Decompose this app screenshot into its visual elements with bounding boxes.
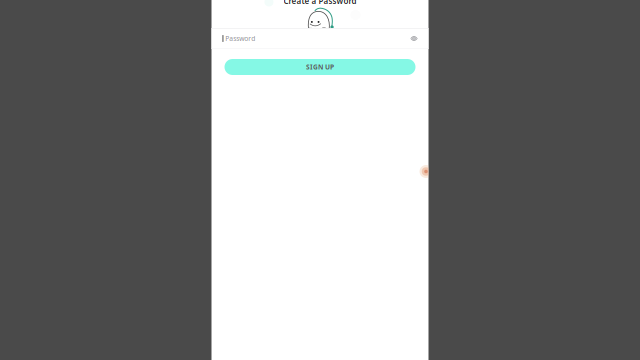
staticText: Create a Password xyxy=(283,0,356,6)
button[interactable]: Password xyxy=(211,28,428,49)
staticText: Password xyxy=(225,34,255,43)
button[interactable]: SIGN UP xyxy=(224,59,415,75)
staticText: SIGN UP xyxy=(306,63,334,71)
